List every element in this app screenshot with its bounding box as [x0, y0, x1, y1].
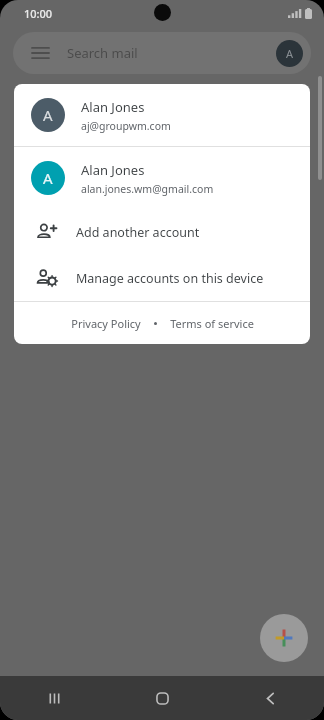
- staticText: Privacy Policy: [71, 316, 141, 331]
- staticText: Search mail: [67, 44, 138, 62]
- staticText: 10:00: [24, 6, 53, 21]
- button[interactable]: Account: [276, 40, 303, 67]
- button[interactable]: Open navigation drawer: [13, 32, 311, 74]
- button[interactable]: A: [14, 147, 310, 209]
- button[interactable]: Terms of service: [166, 310, 258, 337]
- staticText: aj@groupwm.com: [81, 119, 171, 133]
- button[interactable]: Recent apps: [0, 676, 108, 720]
- staticText: A: [43, 105, 53, 125]
- staticText: alan.jones.wm@gmail.com: [81, 182, 214, 196]
- staticText: Alan Jones: [81, 161, 145, 179]
- button[interactable]: Add another account: [14, 209, 310, 255]
- staticText: A: [286, 46, 294, 61]
- button[interactable]: Compose: [260, 614, 308, 662]
- staticText: Manage accounts on this device: [76, 270, 264, 287]
- button[interactable]: Privacy Policy: [67, 310, 145, 337]
- staticText: Alan Jones: [81, 98, 145, 116]
- button[interactable]: A: [14, 84, 310, 146]
- button[interactable]: Back: [216, 676, 324, 720]
- button[interactable]: Manage accounts on this device: [14, 255, 310, 301]
- staticText: Add another account: [76, 224, 200, 241]
- button[interactable]: Home: [108, 676, 216, 720]
- staticText: Terms of service: [170, 316, 254, 331]
- staticText: A: [43, 168, 53, 188]
- button[interactable]: Open navigation drawer: [25, 38, 55, 68]
